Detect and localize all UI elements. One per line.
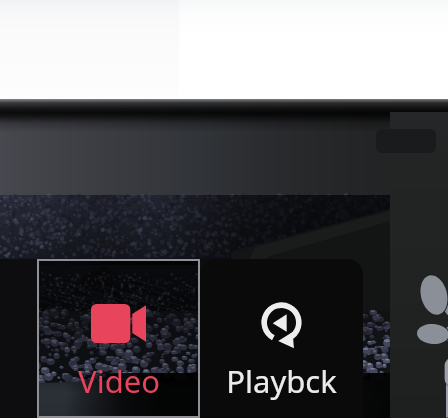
button[interactable]: Playbck (200, 259, 363, 418)
staticText: Playbck (226, 360, 337, 402)
button[interactable]: Video (37, 259, 200, 418)
staticText: Video (78, 360, 160, 402)
